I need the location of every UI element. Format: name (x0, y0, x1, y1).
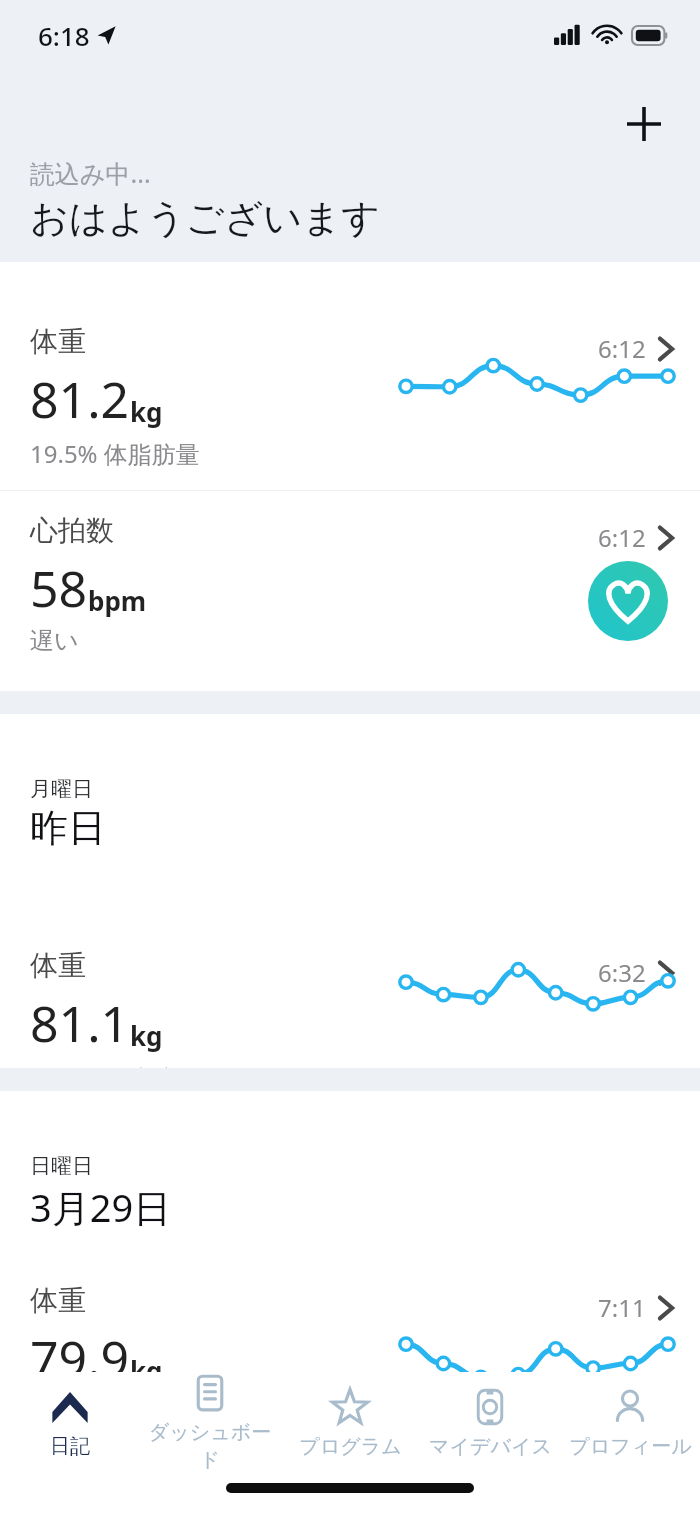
staticText: 19.5% 体脂肪量 (30, 437, 200, 470)
staticText: マイデバイス (429, 1434, 552, 1459)
staticText: kg (130, 1018, 163, 1053)
staticText: 81.1 (30, 989, 130, 1057)
staticText: 月曜日 (30, 776, 93, 802)
staticText: 6:18 (38, 18, 90, 53)
staticText: 遅い (30, 626, 79, 656)
button[interactable]: 日記 (0, 1372, 140, 1472)
staticText: 読込み中... (30, 156, 151, 190)
staticText: 81.2 (30, 365, 130, 433)
staticText: プロフィール (569, 1434, 692, 1459)
staticText: kg (130, 1353, 163, 1388)
staticText: 日記 (50, 1434, 90, 1459)
staticText: 体重 (30, 948, 86, 983)
staticText: 体重 (30, 324, 86, 359)
button[interactable]: 追加 (616, 96, 672, 152)
button[interactable]: 6:32 (0, 886, 700, 1068)
staticText: 6:12 (598, 332, 646, 365)
button[interactable]: 6:12 (0, 262, 700, 490)
button[interactable]: プロフィール (560, 1372, 700, 1472)
staticText: 心拍数 (30, 513, 114, 548)
staticText: 79.9 (30, 1324, 130, 1392)
staticText: 7:11 (598, 1291, 646, 1324)
staticText: bpm (88, 583, 147, 618)
staticText: 3月29日 (30, 1181, 172, 1233)
button[interactable]: 6:12 (0, 491, 700, 691)
staticText: 58 (30, 554, 88, 622)
button[interactable]: プログラム (280, 1372, 420, 1472)
staticText: 日曜日 (30, 1153, 93, 1179)
staticText: 昨日 (30, 804, 106, 852)
staticText: 6:12 (598, 521, 646, 554)
staticText: kg (130, 394, 163, 429)
staticText: ダッシュボード (140, 1420, 280, 1472)
button[interactable]: 7:11 (0, 1267, 700, 1467)
button[interactable]: マイデバイス (420, 1372, 560, 1472)
staticText: プログラム (299, 1434, 402, 1459)
button[interactable]: ダッシュボード (140, 1372, 280, 1472)
staticText: 6:32 (598, 956, 646, 989)
staticText: 体重 (30, 1283, 86, 1318)
staticText: おはようございます (30, 194, 381, 242)
